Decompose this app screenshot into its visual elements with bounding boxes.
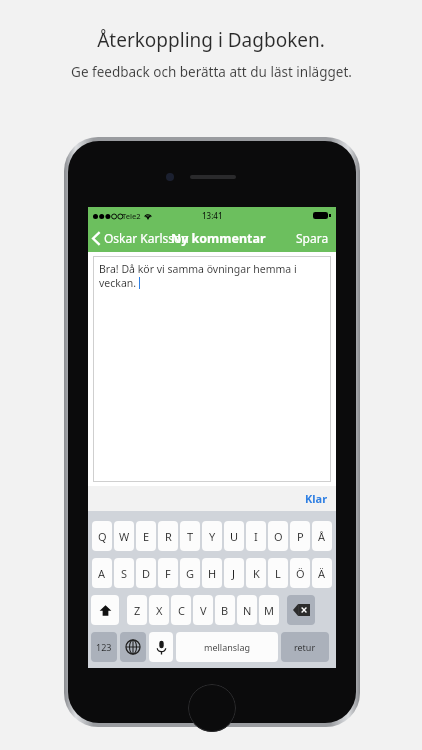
staticText: veckan.	[99, 276, 137, 290]
button[interactable]: Ö	[290, 558, 310, 588]
staticText: Ö	[296, 566, 305, 581]
button[interactable]: K	[246, 558, 266, 588]
staticText: I	[254, 529, 258, 544]
button[interactable]: V	[193, 595, 213, 625]
button[interactable]: Q	[92, 521, 112, 551]
staticText: Ä	[318, 566, 326, 581]
button[interactable]: P	[290, 521, 310, 551]
staticText: X	[156, 603, 163, 618]
button[interactable]: T	[180, 521, 200, 551]
button[interactable]: H	[202, 558, 222, 588]
staticText: W	[119, 529, 130, 544]
button[interactable]: Bra! Då kör vi samma övningar hemma i	[99, 262, 325, 476]
button[interactable]: retur	[281, 632, 329, 662]
staticText: Y	[209, 529, 216, 544]
button[interactable]: Y	[202, 521, 222, 551]
staticText: G	[186, 566, 195, 581]
button[interactable]: G	[180, 558, 200, 588]
staticText: Ny kommentar	[171, 230, 266, 247]
button[interactable]: L	[268, 558, 288, 588]
staticText: L	[275, 566, 281, 581]
button[interactable]: D	[136, 558, 156, 588]
button[interactable]: mellanslag	[176, 632, 278, 662]
button[interactable]: Å	[312, 521, 332, 551]
button[interactable]: B	[215, 595, 235, 625]
button[interactable]: U	[224, 521, 244, 551]
button[interactable]: C	[171, 595, 191, 625]
staticText: V	[200, 603, 207, 618]
staticText: N	[243, 603, 252, 618]
staticText: J	[232, 566, 236, 581]
button[interactable]: X	[149, 595, 169, 625]
button[interactable]: 123	[91, 632, 117, 662]
staticText: M	[264, 603, 274, 618]
staticText: Ge feedback och berätta att du läst inlä…	[71, 63, 352, 81]
staticText: B	[221, 603, 229, 618]
button[interactable]: F	[158, 558, 178, 588]
button[interactable]: S	[114, 558, 134, 588]
button[interactable]: W	[114, 521, 134, 551]
button[interactable]: R	[158, 521, 178, 551]
button[interactable]: Backspace	[287, 595, 315, 625]
staticText: Bra! Då kör vi samma övningar hemma i	[99, 262, 297, 276]
button[interactable]: J	[224, 558, 244, 588]
staticText: 13:41	[202, 210, 223, 221]
button[interactable]: Oskar Karlsson	[92, 230, 189, 246]
staticText: F	[165, 566, 171, 581]
staticText: C	[178, 603, 185, 618]
button[interactable]: Change keyboard	[120, 632, 146, 662]
button[interactable]: Dictate	[149, 632, 173, 662]
button[interactable]: N	[237, 595, 257, 625]
staticText: A	[98, 566, 106, 581]
button[interactable]: E	[136, 521, 156, 551]
staticText: H	[208, 566, 217, 581]
button[interactable]: O	[268, 521, 288, 551]
staticText: T	[187, 529, 194, 544]
staticText: Å	[318, 529, 326, 544]
button[interactable]: I	[246, 521, 266, 551]
staticText: retur	[294, 641, 316, 653]
button[interactable]: Ä	[312, 558, 332, 588]
button[interactable]: Klar	[305, 491, 328, 506]
button[interactable]: Home	[188, 684, 236, 732]
staticText: P	[297, 529, 304, 544]
staticText: Q	[98, 529, 107, 544]
staticText: K	[253, 566, 260, 581]
staticText: S	[121, 566, 128, 581]
button[interactable]: Spara	[296, 230, 329, 246]
staticText: Tele2	[122, 211, 141, 221]
staticText: Oskar Karlsson	[104, 230, 189, 246]
staticText: U	[230, 529, 239, 544]
button[interactable]: Z	[127, 595, 147, 625]
staticText: O	[274, 529, 283, 544]
staticText: Z	[134, 603, 141, 618]
staticText: D	[142, 566, 151, 581]
button[interactable]: A	[92, 558, 112, 588]
button[interactable]: M	[259, 595, 279, 625]
staticText: mellanslag	[204, 641, 250, 653]
button[interactable]: Shift	[91, 595, 119, 625]
staticText: R	[165, 529, 172, 544]
staticText: Återkoppling i Dagboken.	[97, 27, 325, 53]
staticText: 123	[96, 641, 112, 653]
staticText: E	[143, 529, 150, 544]
